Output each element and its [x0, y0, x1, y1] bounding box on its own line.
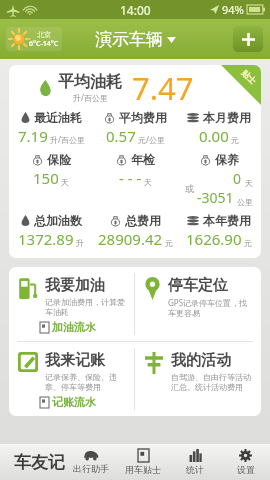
button[interactable]: 记账流水 — [40, 395, 96, 409]
button[interactable]: Add vehicle — [233, 26, 263, 52]
staticText: 记录加油费用，计算爱 — [45, 297, 125, 307]
staticText: 汇总。统计活动费用 — [171, 382, 243, 392]
staticText: 天 — [245, 178, 253, 188]
staticText: 保养 — [215, 152, 239, 167]
staticText: 元/公里 — [138, 134, 165, 145]
button[interactable]: 我要加油 — [9, 267, 134, 341]
staticText: 章、停车等费用 — [45, 382, 101, 392]
staticText: 总费用 — [125, 213, 161, 228]
button[interactable]: 设置 — [221, 444, 270, 480]
staticText: 升/百公里 — [50, 134, 85, 145]
staticText: 平均费用 — [119, 110, 167, 125]
staticText: 车油耗 — [45, 307, 69, 317]
staticText: 28909.42 — [98, 229, 163, 249]
button[interactable]: 总费用 — [93, 213, 177, 249]
staticText: 年检 — [131, 152, 155, 167]
staticText: 演示车辆 — [95, 29, 163, 50]
staticText: -3051 — [197, 188, 234, 207]
staticText: 升 — [76, 238, 84, 248]
staticText: 出行助手 — [73, 463, 109, 474]
staticText: 保险 — [47, 152, 71, 167]
button[interactable]: 保养 — [177, 152, 261, 207]
button[interactable]: 统计 — [169, 444, 221, 480]
staticText: 14:00 — [120, 2, 151, 18]
staticText: 本年费用 — [203, 213, 251, 228]
button[interactable]: 我的活动 — [135, 342, 261, 416]
staticText: 本月费用 — [203, 110, 251, 125]
staticText: 设置 — [237, 464, 255, 475]
staticText: GPS记录停车位置，找 — [168, 297, 248, 308]
staticText: 元 — [231, 135, 239, 145]
staticText: - - - — [119, 168, 142, 188]
staticText: 最近油耗 — [34, 110, 82, 125]
staticText: 公里 — [237, 197, 253, 207]
button[interactable]: 北京 — [6, 27, 62, 51]
staticText: 记录保养、保险、违 — [45, 372, 117, 382]
staticText: 贴士 — [240, 68, 258, 86]
staticText: 94% — [222, 2, 244, 17]
button[interactable]: 最近油耗 — [9, 110, 93, 146]
staticText: 0 — [233, 169, 242, 188]
button[interactable]: 我来记账 — [9, 342, 134, 416]
staticText: 或 — [185, 183, 194, 194]
button[interactable]: 总加油数 — [9, 213, 93, 249]
staticText: 6°C-14°C — [29, 39, 59, 49]
staticText: 总加油数 — [34, 213, 82, 228]
button[interactable]: 出行助手 — [65, 444, 117, 480]
button[interactable]: 本月费用 — [177, 110, 261, 146]
staticText: 元 — [244, 238, 252, 248]
staticText: 我来记账 — [45, 351, 105, 370]
staticText: 我的活动 — [171, 351, 231, 370]
button[interactable]: 停车定位 — [135, 267, 261, 341]
button[interactable]: 年检 — [93, 152, 177, 188]
staticText: 加油流水 — [52, 320, 96, 334]
staticText: 天 — [61, 177, 69, 187]
staticText: 7.19 — [18, 126, 48, 146]
staticText: 1372.89 — [18, 229, 74, 249]
staticText: 自驾游、自由行等活动 — [171, 372, 251, 382]
staticText: 7.47 — [132, 67, 194, 109]
button[interactable]: 演示车辆 — [95, 29, 176, 50]
staticText: 平均油耗 — [58, 72, 122, 92]
button[interactable]: 加油流水 — [40, 320, 96, 334]
staticText: 0.00 — [199, 126, 229, 146]
button[interactable]: 平均油耗 — [9, 65, 261, 110]
staticText: 元 — [165, 238, 173, 248]
button[interactable]: 本年费用 — [177, 213, 261, 249]
button[interactable]: 用车贴士 — [117, 444, 169, 480]
button[interactable]: 保险 — [9, 152, 93, 188]
staticText: 北京 — [37, 30, 51, 39]
staticText: 用车贴士 — [125, 464, 161, 475]
staticText: 升/百公里 — [73, 92, 108, 103]
staticText: 150 — [33, 168, 59, 188]
staticText: 统计 — [186, 464, 204, 475]
staticText: 记账流水 — [52, 395, 96, 409]
staticText: 1626.90 — [186, 229, 242, 249]
button[interactable]: 平均费用 — [93, 110, 177, 146]
staticText: 停车定位 — [168, 276, 228, 295]
staticText: 我要加油 — [45, 276, 105, 295]
staticText: 0.57 — [106, 126, 136, 146]
staticText: 车友记 — [14, 452, 65, 473]
staticText: 车更容易 — [168, 308, 200, 318]
staticText: 天 — [144, 177, 152, 187]
